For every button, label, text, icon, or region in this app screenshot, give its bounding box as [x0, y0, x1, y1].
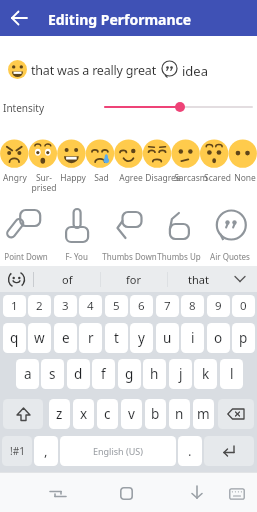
- button[interactable]: Sad: [87, 172, 116, 184]
- button[interactable]: [3, 399, 43, 429]
- staticText: Sarcasm: [174, 172, 203, 184]
- staticText: Sur- prised: [31, 172, 57, 193]
- button[interactable]: Sur- prised: [29, 172, 58, 193]
- button[interactable]: b: [145, 399, 166, 429]
- staticText: Happy: [60, 172, 86, 184]
- button[interactable]: 0: [232, 295, 255, 317]
- staticText: t: [114, 329, 119, 347]
- staticText: w: [34, 329, 45, 347]
- button[interactable]: a: [16, 359, 39, 389]
- button[interactable]: n: [169, 399, 190, 429]
- button[interactable]: None: [232, 172, 257, 184]
- staticText: v: [128, 405, 135, 423]
- staticText: that was a really great: [31, 62, 156, 79]
- staticText: 2: [36, 298, 43, 314]
- button[interactable]: !#1: [2, 436, 32, 466]
- button[interactable]: 1: [3, 295, 26, 317]
- staticText: x: [80, 405, 88, 423]
- button[interactable]: [234, 274, 246, 284]
- button[interactable]: Angry: [0, 172, 29, 184]
- staticText: None: [234, 172, 256, 184]
- button[interactable]: v: [121, 399, 142, 429]
- staticText: e: [62, 329, 70, 347]
- button[interactable]: c: [97, 399, 118, 429]
- staticText: Agree: [119, 172, 143, 184]
- button[interactable]: 4: [79, 295, 102, 317]
- button[interactable]: p: [232, 323, 255, 353]
- staticText: Sad: [94, 172, 109, 184]
- button[interactable]: [190, 485, 204, 501]
- button[interactable]: 2: [28, 295, 51, 317]
- staticText: Scared: [204, 172, 231, 184]
- staticText: ,: [44, 442, 48, 460]
- staticText: Intensity: [3, 101, 45, 115]
- button[interactable]: [218, 399, 254, 429]
- button[interactable]: r: [79, 323, 102, 353]
- button[interactable]: q: [3, 323, 26, 353]
- button[interactable]: [120, 487, 133, 500]
- button[interactable]: k: [194, 359, 217, 389]
- button[interactable]: Happy: [58, 172, 87, 184]
- button[interactable]: h: [143, 359, 166, 389]
- staticText: 4: [87, 298, 94, 314]
- staticText: Thumbs Down: [102, 251, 153, 262]
- button[interactable]: .: [178, 436, 202, 466]
- staticText: l: [230, 365, 234, 383]
- staticText: 6: [138, 298, 145, 314]
- button[interactable]: 6: [130, 295, 153, 317]
- button[interactable]: o: [207, 323, 230, 353]
- button[interactable]: m: [193, 399, 214, 429]
- button[interactable]: g: [118, 359, 141, 389]
- staticText: Point Down: [4, 251, 48, 262]
- button[interactable]: [7, 270, 26, 289]
- button[interactable]: 8: [181, 295, 204, 317]
- button[interactable]: [229, 488, 245, 500]
- button[interactable]: i: [181, 323, 204, 353]
- button[interactable]: w: [28, 323, 51, 353]
- button[interactable]: [12, 10, 28, 26]
- button[interactable]: e: [54, 323, 77, 353]
- staticText: o: [214, 329, 223, 347]
- button[interactable]: ,: [34, 436, 58, 466]
- button[interactable]: f: [92, 359, 115, 389]
- button[interactable]: 3: [54, 295, 77, 317]
- button[interactable]: u: [156, 323, 179, 353]
- button[interactable]: [100, 97, 257, 117]
- button[interactable]: English (US): [60, 436, 176, 466]
- button[interactable]: 9: [207, 295, 230, 317]
- staticText: m: [197, 405, 210, 423]
- staticText: 1: [11, 298, 18, 314]
- staticText: k: [202, 365, 210, 383]
- staticText: d: [74, 365, 83, 383]
- button[interactable]: l: [220, 359, 243, 389]
- button[interactable]: x: [73, 399, 94, 429]
- button[interactable]: Scared: [203, 172, 232, 184]
- button[interactable]: Agree: [116, 172, 145, 184]
- button[interactable]: Sarcasm: [174, 172, 203, 184]
- button[interactable]: 7: [156, 295, 179, 317]
- button[interactable]: [204, 436, 254, 466]
- button[interactable]: Disagree: [145, 172, 174, 184]
- button[interactable]: [0, 204, 257, 250]
- button[interactable]: that: [167, 266, 230, 292]
- button[interactable]: d: [67, 359, 90, 389]
- button[interactable]: z: [49, 399, 70, 429]
- staticText: 9: [215, 298, 222, 314]
- button[interactable]: of: [34, 266, 100, 292]
- button[interactable]: for: [100, 266, 167, 292]
- staticText: Air Quotes: [210, 251, 250, 262]
- button[interactable]: [49, 487, 67, 501]
- staticText: Angry: [3, 172, 27, 184]
- staticText: z: [56, 405, 63, 423]
- staticText: 7: [164, 298, 171, 314]
- staticText: q: [10, 329, 19, 347]
- staticText: 5: [113, 298, 120, 314]
- button[interactable]: s: [41, 359, 64, 389]
- button[interactable]: j: [169, 359, 192, 389]
- button[interactable]: y: [130, 323, 153, 353]
- staticText: 8: [189, 298, 196, 314]
- button[interactable]: t: [105, 323, 128, 353]
- button[interactable]: 5: [105, 295, 128, 317]
- staticText: r: [88, 329, 94, 347]
- staticText: j: [179, 365, 183, 383]
